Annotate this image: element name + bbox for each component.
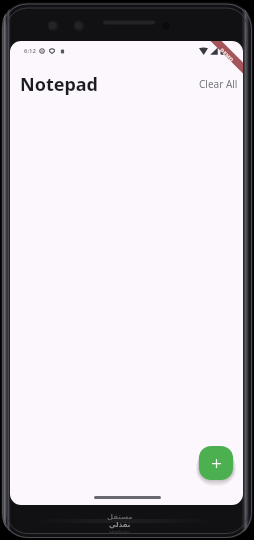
- staticText: نفذلي: [109, 521, 131, 529]
- staticText: nafadly.com: [109, 529, 130, 534]
- button[interactable]: Clear All: [197, 73, 240, 95]
- button[interactable]: Home: [94, 496, 161, 499]
- staticText: مستقل: [107, 513, 133, 521]
- staticText: Clear All: [199, 77, 238, 91]
- staticText: 6:12: [24, 47, 36, 55]
- button[interactable]: Add note: [199, 446, 233, 480]
- staticText: DEMO: [220, 47, 235, 63]
- staticText: Notepad: [20, 72, 98, 97]
